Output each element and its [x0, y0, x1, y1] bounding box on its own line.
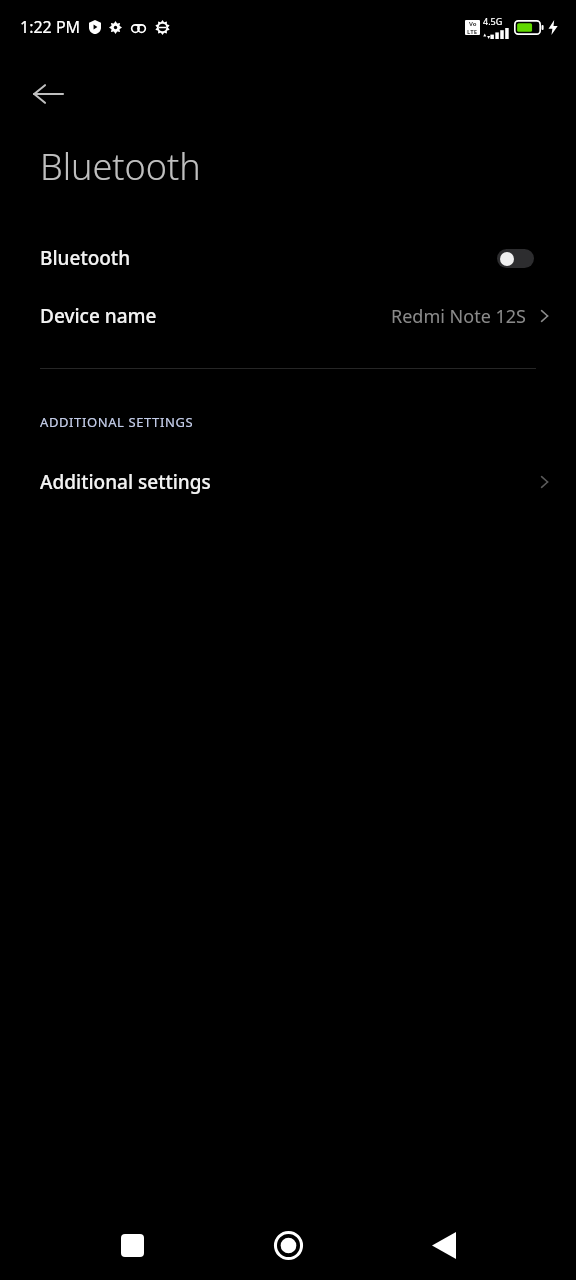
button[interactable]: Back [420, 1221, 468, 1269]
button[interactable]: Bluetooth toggle, off [497, 249, 534, 268]
button[interactable]: Bluetooth [0, 229, 576, 287]
button[interactable]: Recent apps [108, 1221, 156, 1269]
staticText: ADDITIONAL SETTINGS [40, 413, 194, 431]
staticText: Redmi Note 12S [391, 304, 526, 329]
staticText: Device name [40, 303, 157, 329]
staticText: Bluetooth [40, 245, 131, 271]
button[interactable]: Back [26, 72, 70, 116]
staticText: Vo [469, 20, 477, 28]
staticText: Bluetooth [40, 142, 201, 191]
button[interactable]: Home [264, 1221, 312, 1269]
staticText: 4.5G [483, 15, 503, 27]
button[interactable]: Device name [0, 287, 576, 345]
button[interactable]: Additional settings [0, 459, 576, 505]
staticText: 1:22 PM [20, 16, 81, 38]
staticText: LTE [467, 28, 478, 35]
staticText: Additional settings [40, 469, 211, 495]
